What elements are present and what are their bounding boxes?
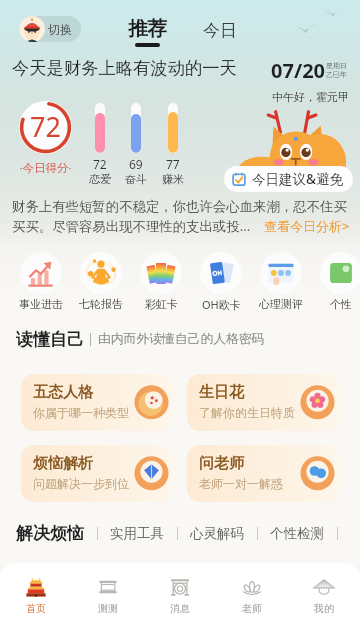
staticText: 老师一对一解惑 (199, 476, 283, 491)
button[interactable]: 心理测评 (251, 252, 311, 311)
staticText: 问题解决一步到位 (33, 476, 129, 491)
button[interactable]: 首页 (0, 563, 72, 627)
button[interactable]: 个性 (311, 252, 360, 311)
button[interactable]: 推荐 (128, 16, 167, 47)
staticText: 72 (93, 156, 107, 172)
staticText: 奋斗 (125, 172, 147, 186)
button[interactable]: 彩虹卡 (131, 252, 191, 311)
button[interactable]: 烦恼解析 (21, 445, 173, 502)
staticText: 老师 (242, 602, 262, 615)
staticText: 今天是财务上略有波动的一天 (12, 57, 237, 79)
button[interactable]: 今日 (203, 20, 237, 41)
staticText: 财务上有些短暂的不稳定，你也许会心血来潮，忍不住买 (12, 198, 347, 215)
staticText: 五态人格 (33, 383, 93, 402)
button[interactable]: 解决烦恼 (16, 523, 84, 544)
staticText: OH欧卡 (202, 297, 241, 312)
button[interactable]: 实用工具 (110, 525, 164, 542)
staticText: 推荐 (128, 16, 167, 41)
button[interactable]: 七轮报告 (71, 252, 131, 311)
staticText: 乙巳年 (326, 70, 347, 79)
staticText: 恋爱 (89, 172, 111, 186)
staticText: 77 (166, 156, 180, 172)
staticText: 彩虹卡 (145, 297, 178, 311)
button[interactable]: 测测 (72, 563, 144, 627)
button[interactable]: OH欧卡 (191, 252, 251, 312)
staticText: 生日花 (199, 383, 244, 402)
button[interactable]: 事业进击 (11, 252, 71, 311)
staticText: 个性 (330, 297, 352, 311)
staticText: 心理测评 (259, 297, 303, 311)
button[interactable]: 心灵解码 (190, 525, 244, 542)
button[interactable]: 我的 (288, 563, 360, 627)
button[interactable]: 生日花 (187, 374, 339, 431)
staticText: 烦恼解析 (33, 454, 93, 473)
staticText: 了解你的生日特质 (199, 405, 295, 420)
button[interactable]: 切换 (19, 16, 81, 42)
staticText: 中午好，霍元甲 (272, 90, 349, 104)
staticText: 买买。尽管容易出现不理性的支出或投… (12, 217, 251, 235)
staticText: ·今日得分· (16, 160, 75, 176)
staticText: 69 (129, 156, 143, 172)
staticText: 测测 (98, 602, 118, 615)
button[interactable]: 今日建议&避免 (224, 166, 353, 192)
button[interactable]: 查看今日分析> (264, 217, 350, 235)
staticText: 赚米 (162, 172, 184, 186)
staticText: 事业进击 (19, 297, 63, 311)
staticText: 首页 (26, 602, 46, 615)
button[interactable]: 五态人格 (21, 374, 173, 431)
staticText: 由内而外读懂自己的人格密码 (98, 331, 265, 347)
button[interactable]: 老师 (216, 563, 288, 627)
staticText: 07/20 (271, 57, 326, 84)
staticText: 消息 (170, 602, 190, 615)
staticText: 星期日 (326, 61, 347, 70)
staticText: 今日建议&避免 (252, 170, 343, 188)
staticText: 读懂自己 (16, 329, 84, 349)
button[interactable]: 消息 (144, 563, 216, 627)
button[interactable]: 问老师 (187, 445, 339, 502)
staticText: 问老师 (199, 454, 244, 473)
staticText: 你属于哪一种类型 (33, 405, 129, 420)
button[interactable]: 个性检测 (270, 525, 324, 542)
staticText: 七轮报告 (79, 297, 123, 311)
staticText: 72 (30, 108, 61, 145)
staticText: 我的 (314, 602, 334, 615)
staticText: 切换 (48, 22, 72, 37)
